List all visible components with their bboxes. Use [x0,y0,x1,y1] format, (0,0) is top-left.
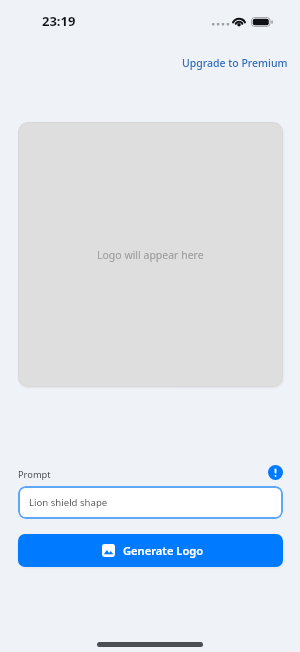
button[interactable]: Information [268,465,283,480]
button[interactable]: Generate Logo [18,534,283,567]
staticText: Upgrade to Premium [182,56,288,70]
staticText: Logo will appear here [97,248,204,262]
button[interactable]: Upgrade to Premium [176,52,294,74]
button[interactable]: Lion shield shape [18,486,283,519]
staticText: Lion shield shape [29,496,108,509]
staticText: Prompt [18,468,51,481]
staticText: 23:19 [42,12,76,30]
staticText: Generate Logo [123,543,204,558]
